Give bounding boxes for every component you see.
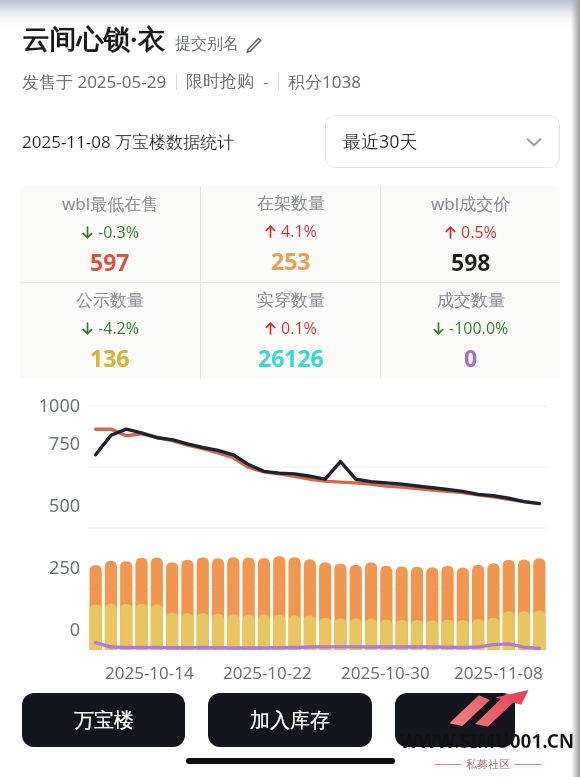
staticText: 500 — [16, 493, 80, 518]
staticText: 在架数量 — [257, 193, 325, 214]
staticText: WWW.SIMU001.CN — [400, 728, 575, 754]
staticText: wbl成交价 — [431, 192, 511, 215]
staticText: - — [263, 70, 269, 93]
staticText: -0.3% — [98, 221, 140, 243]
staticText: 250 — [16, 555, 80, 580]
staticText: 2025-11-08 — [454, 661, 543, 684]
button[interactable]: 成交数量 — [381, 283, 560, 379]
button[interactable]: 在架数量 — [201, 186, 380, 282]
staticText: 4.1% — [281, 220, 317, 242]
other: Edit alias — [245, 36, 262, 53]
staticText: 597 — [90, 246, 130, 277]
staticText: 750 — [16, 431, 80, 456]
staticText: 2025-10-22 — [223, 661, 312, 684]
button[interactable]: 提交别名 — [175, 34, 262, 57]
staticText: 成交数量 — [437, 290, 505, 311]
staticText: wbl最低在售 — [62, 192, 159, 215]
staticText: 最近30天 — [343, 129, 418, 154]
staticText: 公示数量 — [76, 290, 144, 311]
button[interactable]: 加入库存 — [208, 693, 372, 747]
staticText: 私募社区 — [466, 757, 510, 771]
staticText: 1000 — [16, 393, 80, 418]
button[interactable]: 万宝楼 — [22, 693, 185, 747]
staticText: 0 — [16, 617, 80, 642]
staticText: 加入库存 — [250, 708, 330, 733]
staticText: 136 — [90, 342, 130, 373]
staticText: 253 — [271, 245, 311, 276]
staticText: -100.0% — [449, 317, 509, 339]
staticText: 2025-10-30 — [341, 661, 430, 684]
staticText: 598 — [451, 246, 491, 277]
staticText: 云间心锁·衣 — [22, 20, 165, 57]
button[interactable]: 公示数量 — [20, 283, 200, 379]
staticText: 2025-10-14 — [105, 661, 194, 684]
button[interactable]: 实穿数量 — [201, 283, 380, 379]
staticText: 实穿数量 — [257, 290, 325, 311]
staticText: 0 — [464, 342, 478, 373]
staticText: 提交别名 — [175, 34, 239, 54]
staticText: 发售于 2025-05-29 — [22, 70, 167, 93]
staticText: 0.1% — [281, 317, 317, 339]
staticText: 万宝楼 — [74, 708, 134, 733]
button[interactable]: More actions — [395, 693, 515, 747]
staticText: 26126 — [258, 342, 324, 373]
button[interactable]: wbl最低在售 — [20, 186, 200, 282]
staticText: 限时抢购 — [186, 71, 254, 92]
staticText: -4.2% — [98, 317, 140, 339]
staticText: 积分1038 — [288, 70, 361, 93]
staticText: 2025-11-08 万宝楼数据统计 — [22, 130, 235, 153]
button[interactable]: wbl成交价 — [381, 186, 560, 282]
button[interactable]: 最近30天 — [325, 115, 560, 168]
staticText: 0.5% — [461, 221, 497, 243]
